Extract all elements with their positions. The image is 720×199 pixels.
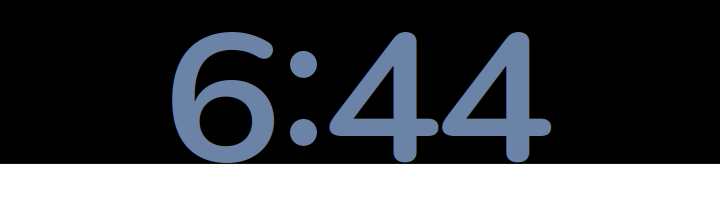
staticText: 44 [322,0,551,199]
staticText: 6 [161,0,279,199]
group: 6 [0,0,720,199]
